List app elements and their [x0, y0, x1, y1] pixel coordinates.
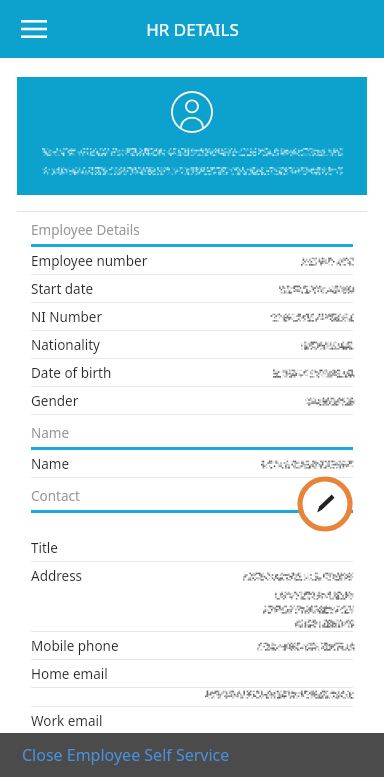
button[interactable]: Mobile phone: [31, 632, 353, 660]
staticText: HR DETAILS: [146, 18, 239, 41]
button[interactable]: Edit: [297, 476, 353, 532]
staticText: Name: [31, 455, 70, 473]
staticText: Mobile phone: [31, 637, 119, 655]
staticText: Title: [31, 539, 58, 557]
staticText: Date of birth: [31, 364, 112, 382]
button[interactable]: Nationality: [31, 331, 353, 359]
button[interactable]: Date of birth: [31, 359, 353, 387]
staticText: Employee Details: [31, 221, 140, 239]
button[interactable]: Start date: [31, 275, 353, 303]
staticText: Home email: [31, 665, 108, 683]
button[interactable]: Menu: [14, 9, 54, 49]
staticText: NI Number: [31, 308, 103, 326]
staticText: Work email: [31, 712, 103, 730]
staticText: Employee number: [31, 252, 148, 270]
button[interactable]: [17, 77, 367, 195]
button[interactable]: Title: [31, 534, 353, 562]
staticText: Address: [31, 567, 83, 585]
button[interactable]: Gender: [31, 387, 353, 415]
button[interactable]: NI Number: [31, 303, 353, 331]
button[interactable]: Address: [31, 562, 353, 632]
staticText: Start date: [31, 280, 94, 298]
staticText: Contact: [31, 487, 80, 505]
staticText: Name: [31, 424, 70, 442]
staticText: Nationality: [31, 336, 100, 354]
button[interactable]: Name: [31, 450, 353, 478]
button[interactable]: Close Employee Self Service: [0, 733, 384, 777]
button[interactable]: Work email: [31, 707, 353, 735]
staticText: Gender: [31, 392, 79, 410]
staticText: Close Employee Self Service: [22, 744, 230, 766]
button[interactable]: Employee number: [31, 247, 353, 275]
button[interactable]: Home email: [31, 660, 353, 688]
